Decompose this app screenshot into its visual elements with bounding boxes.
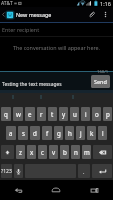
button[interactable]: Voice input [14,164,23,178]
staticText: AT&T [1,0,13,7]
staticText: . [83,168,85,175]
button[interactable]: Send [91,75,110,88]
staticText: q [4,110,8,118]
button[interactable]: o [92,107,101,121]
button[interactable]: ?123 [1,164,12,178]
staticText: r [40,110,43,118]
staticText: d [33,129,37,137]
staticText: s [22,129,25,137]
button[interactable]: t [48,107,57,121]
staticText: a [9,129,13,137]
button[interactable]: x [27,145,36,159]
staticText: y [62,110,66,118]
button[interactable]: g [54,126,63,140]
staticText: j [80,129,82,137]
button[interactable]: u [70,107,79,121]
button[interactable]: Attach [84,7,98,22]
button[interactable]: s [18,126,28,140]
staticText: 160/1 [97,69,109,75]
button[interactable]: w [13,107,23,121]
staticText: Enter recipient [2,26,40,33]
button[interactable]: m [82,145,91,159]
button[interactable]: Backspace [93,145,112,159]
button[interactable]: k [87,126,96,140]
button[interactable]: d [30,126,40,140]
staticText: Testing the text messages [2,81,62,88]
staticText: p [106,110,110,118]
button[interactable]: r [37,107,46,121]
staticText: u [73,110,77,118]
staticText: t [51,110,54,118]
button[interactable]: h [65,126,74,140]
button[interactable]: c [38,145,47,159]
staticText: o [95,110,99,118]
staticText: f [46,129,49,137]
staticText: ?123 [1,168,12,175]
button[interactable]: Home [37,180,75,200]
button[interactable]: z [16,145,25,159]
staticText: New message [16,11,52,18]
button[interactable]: b [60,145,69,159]
button[interactable]: Enter recipient [0,23,113,36]
staticText: The conversation will appear here. [13,44,101,51]
button[interactable]: Back [0,180,37,200]
staticText: k [90,129,94,137]
button[interactable]: l [98,126,107,140]
button[interactable]: Navigate up [0,7,14,22]
button[interactable]: v [49,145,58,159]
staticText: b [63,148,67,156]
button[interactable]: a [6,126,16,140]
staticText: v [52,148,56,156]
button[interactable]: i [81,107,90,121]
staticText: n [74,148,78,156]
button[interactable]: Shift [1,145,14,159]
button[interactable]: n [71,145,80,159]
button[interactable]: e [25,107,35,121]
button[interactable]: y [59,107,68,121]
button[interactable]: f [42,126,52,140]
staticText: 1:16 [100,0,111,7]
button[interactable]: q [1,107,11,121]
staticText: g [57,129,61,137]
button[interactable]: j [76,126,85,140]
button[interactable]: Enter [92,164,112,178]
button[interactable]: . [78,164,90,178]
staticText: w [16,110,21,118]
staticText: h [68,129,72,137]
staticText: i [85,110,87,118]
button[interactable]: Recent apps [75,180,113,200]
button[interactable]: p [103,107,112,121]
staticText: z [19,148,22,156]
staticText: e [28,110,32,118]
staticText: Send [94,78,107,85]
staticText: l [102,129,104,137]
button[interactable]: More options [98,7,113,22]
staticText: m [84,148,90,156]
staticText: c [41,148,44,156]
staticText: x [30,148,34,156]
